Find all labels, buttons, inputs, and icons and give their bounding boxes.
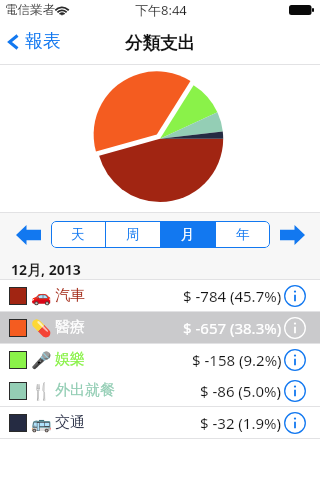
staticText: 周: [126, 226, 140, 243]
staticText: 下午8:44: [135, 1, 187, 19]
staticText: 月: [181, 226, 195, 243]
button[interactable]: 月: [161, 221, 215, 248]
staticText: 汽車: [55, 286, 85, 305]
staticText: 🚌: [31, 414, 52, 433]
staticText: 醫療: [55, 318, 85, 337]
staticText: $ -32 (1.9%): [200, 413, 282, 433]
button[interactable]: Previous period: [15, 223, 41, 247]
button[interactable]: Details: [284, 349, 306, 371]
staticText: 分類支出: [125, 32, 195, 54]
staticText: 報表: [25, 30, 61, 53]
staticText: 年: [236, 226, 250, 243]
button[interactable]: 年: [216, 221, 270, 248]
staticText: 交通: [55, 413, 85, 432]
staticText: 娛樂: [55, 350, 85, 369]
staticText: 12月, 2013: [11, 260, 81, 279]
staticText: 外出就餐: [55, 381, 115, 400]
button[interactable]: 報表: [0, 30, 69, 53]
button[interactable]: Next period: [279, 223, 305, 247]
staticText: 🚗: [31, 287, 52, 306]
button[interactable]: 天: [51, 221, 105, 248]
button[interactable]: Details: [284, 317, 306, 339]
staticText: 🎤: [31, 351, 52, 370]
staticText: 天: [71, 226, 85, 243]
button[interactable]: Details: [284, 380, 306, 402]
staticText: 💊: [31, 319, 52, 338]
button[interactable]: Details: [284, 412, 306, 434]
staticText: 電信業者: [5, 2, 55, 18]
staticText: 🍴: [31, 382, 52, 401]
button[interactable]: 🚗: [0, 280, 320, 311]
button[interactable]: 💊: [0, 312, 320, 343]
button[interactable]: 周: [106, 221, 160, 248]
staticText: $ -657 (38.3%): [183, 318, 282, 338]
button[interactable]: Details: [284, 285, 306, 307]
button[interactable]: 🍴: [0, 375, 320, 406]
staticText: $ -784 (45.7%): [183, 286, 282, 306]
button[interactable]: 🚌: [0, 407, 320, 438]
button[interactable]: 🎤: [0, 344, 320, 375]
staticText: $ -86 (5.0%): [200, 381, 282, 401]
staticText: $ -158 (9.2%): [192, 350, 282, 370]
